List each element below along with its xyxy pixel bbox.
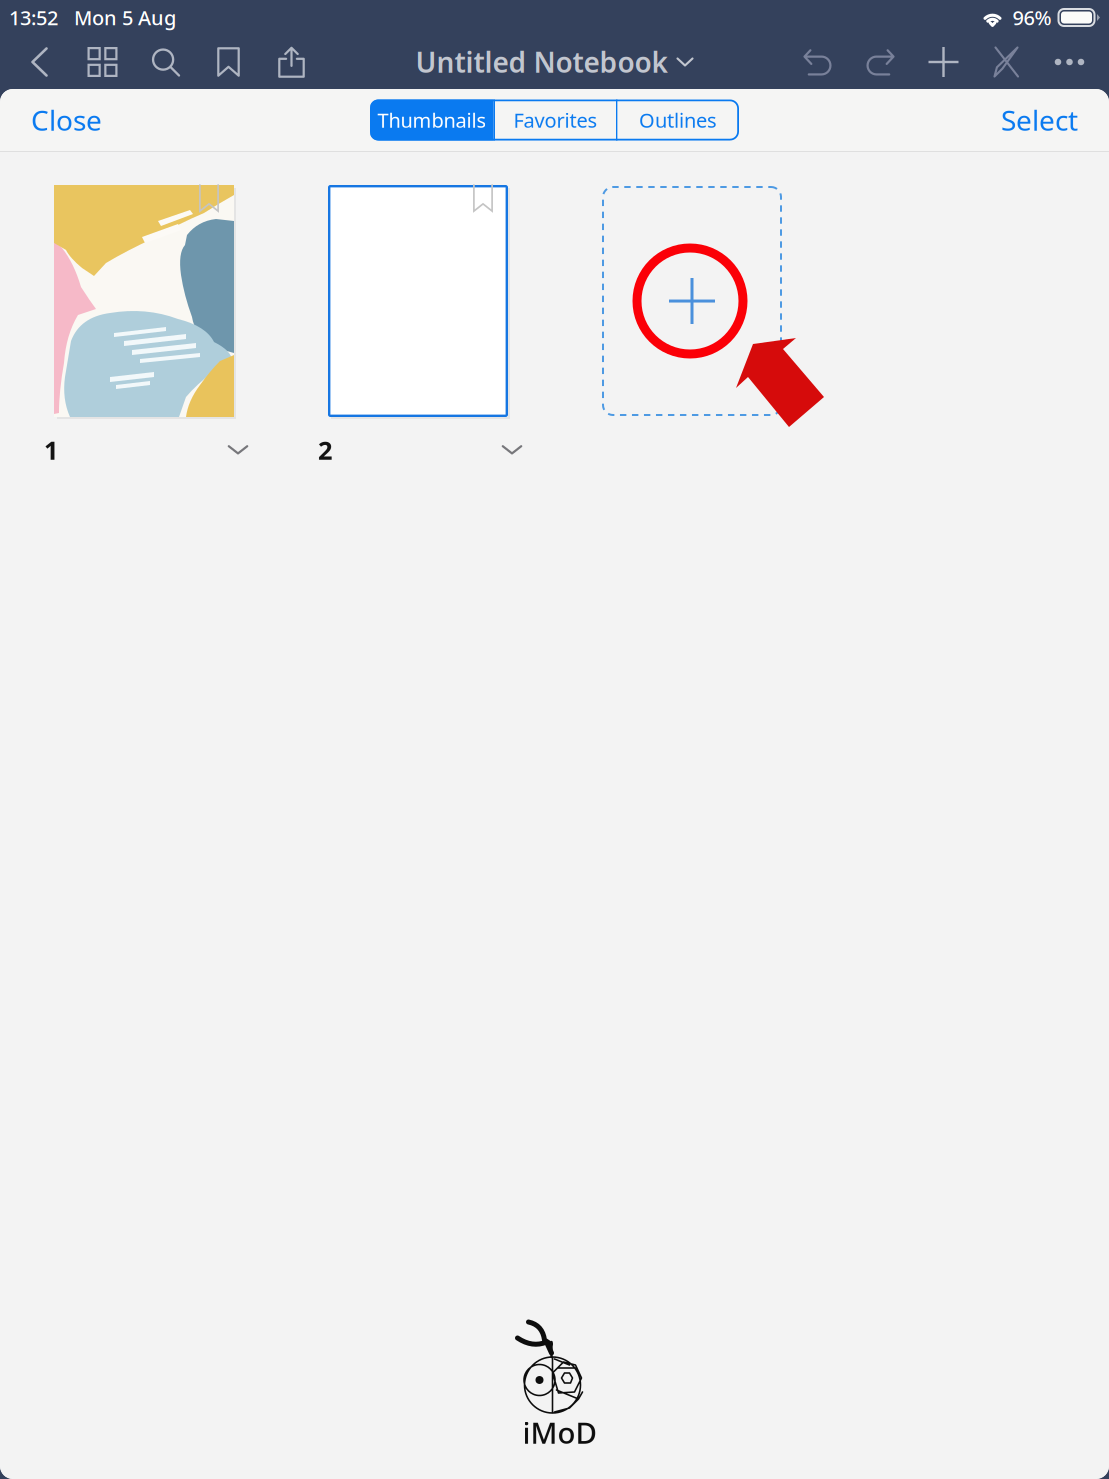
staticText: iMoD	[522, 1413, 596, 1452]
button[interactable]: Page 2 options	[493, 435, 531, 465]
staticText: Mon 5 Aug	[74, 4, 176, 31]
staticText: 2	[318, 433, 332, 467]
button[interactable]: Add	[912, 35, 975, 89]
button[interactable]: Back	[8, 35, 71, 89]
button[interactable]: Outlines	[618, 99, 739, 140]
button[interactable]: Favorites	[495, 99, 616, 140]
staticText: 1	[44, 433, 58, 467]
button[interactable]: Thumbnails	[370, 99, 493, 140]
button[interactable]: Share	[260, 35, 323, 89]
button[interactable]: Close	[17, 89, 116, 151]
staticText: Select	[1001, 101, 1078, 139]
staticText: 96%	[1012, 4, 1051, 31]
button[interactable]: Redo	[849, 35, 912, 89]
button[interactable]: Select	[987, 89, 1092, 151]
button[interactable]	[54, 185, 234, 417]
button[interactable]: Undo	[786, 35, 849, 89]
button[interactable]: Search	[134, 35, 197, 89]
staticText: Close	[31, 101, 102, 139]
button[interactable]: Pages	[71, 35, 134, 89]
button[interactable]: Add page	[602, 185, 782, 417]
button[interactable]	[328, 185, 508, 417]
button[interactable]: More	[1038, 35, 1101, 89]
button[interactable]: Untitled Notebook	[407, 35, 701, 89]
staticText: Outlines	[639, 107, 717, 133]
staticText: 13:52	[9, 4, 58, 31]
staticText: Untitled Notebook	[415, 43, 667, 81]
staticText: Thumbnails	[377, 107, 486, 133]
button[interactable]: Eraser	[975, 35, 1038, 89]
staticText: Favorites	[513, 107, 597, 133]
button[interactable]: Page 1 options	[219, 435, 257, 465]
button[interactable]: Bookmarks	[197, 35, 260, 89]
